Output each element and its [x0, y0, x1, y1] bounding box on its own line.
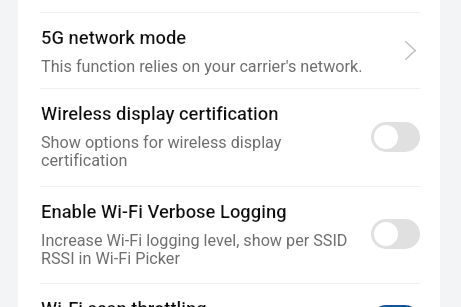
button[interactable]: 5G network mode	[18, 13, 440, 88]
staticText: Enable Wi-Fi Verbose Logging	[41, 201, 287, 223]
staticText: Show options for wireless display certif…	[41, 133, 282, 170]
button[interactable]: Toggle off	[371, 219, 420, 249]
button[interactable]: Toggle off	[371, 122, 420, 152]
button[interactable]: Enable Wi-Fi Verbose Logging	[18, 187, 440, 283]
staticText: Wi-Fi scan throttling	[41, 298, 207, 307]
button[interactable]: Wi-Fi scan throttling	[18, 284, 440, 307]
button[interactable]: Wireless display certification	[18, 89, 440, 186]
staticText: Wireless display certification	[41, 103, 279, 125]
staticText: Increase Wi-Fi logging level, show per S…	[41, 231, 348, 268]
button[interactable]: Toggle on	[371, 305, 420, 307]
staticText: 5G network mode	[41, 27, 187, 49]
staticText: This function relies on your carrier's n…	[41, 57, 363, 76]
button[interactable]: Open 5G network mode	[393, 32, 427, 68]
